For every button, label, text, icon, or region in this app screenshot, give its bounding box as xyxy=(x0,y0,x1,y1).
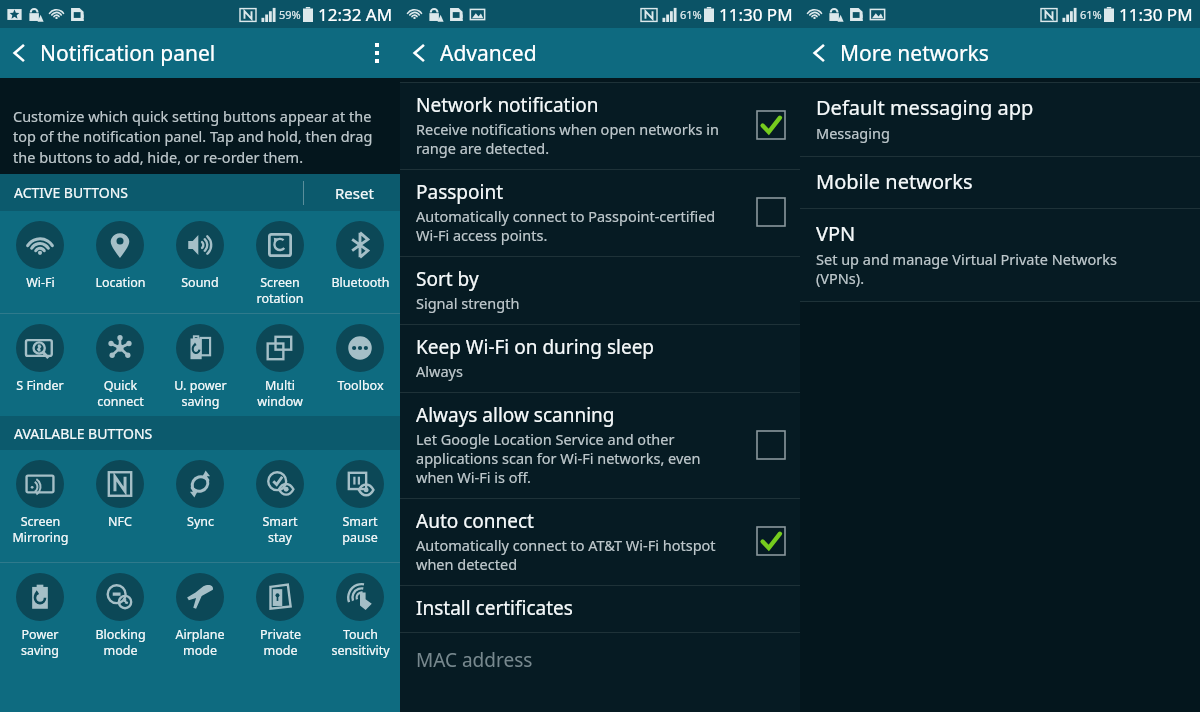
staticText: More networks xyxy=(840,39,989,68)
staticText: Quick connect xyxy=(97,377,144,409)
staticText: S Finder xyxy=(16,377,64,394)
button[interactable]: Passpoint xyxy=(400,170,800,256)
button[interactable]: Power saving xyxy=(0,563,80,675)
button[interactable]: Default messaging app xyxy=(800,83,1200,156)
staticText: Mobile networks xyxy=(816,168,973,195)
staticText: Install certificates xyxy=(416,595,573,621)
staticText: VPN xyxy=(816,220,856,247)
button[interactable]: Location xyxy=(80,211,160,313)
button[interactable]: Smart stay xyxy=(240,450,320,562)
staticText: Toolbox xyxy=(337,377,384,394)
staticText: 59% xyxy=(279,7,301,22)
staticText: Passpoint xyxy=(416,179,504,205)
button[interactable]: Always allow scanning xyxy=(756,430,786,460)
button[interactable]: Blocking mode xyxy=(80,563,160,675)
staticText: Keep Wi-Fi on during sleep xyxy=(416,334,655,360)
staticText: Blocking mode xyxy=(95,626,146,658)
staticText: Power saving xyxy=(21,626,59,658)
staticText: AVAILABLE BUTTONS xyxy=(14,424,153,443)
button[interactable]: Screen rotation xyxy=(240,211,320,313)
staticText: 61% xyxy=(680,7,702,22)
staticText: Default messaging app xyxy=(816,94,1034,121)
staticText: U. power saving xyxy=(174,377,227,409)
button[interactable]: Auto connect xyxy=(756,526,786,556)
button[interactable]: Sync xyxy=(160,450,240,562)
staticText: Automatically connect to Passpoint-certi… xyxy=(416,206,716,245)
staticText: Sync xyxy=(187,513,214,530)
button[interactable]: S Finder xyxy=(0,314,80,416)
staticText: Always allow scanning xyxy=(416,402,615,428)
button[interactable]: U. power saving xyxy=(160,314,240,416)
staticText: Always xyxy=(416,361,463,381)
button[interactable]: Reset xyxy=(308,174,400,211)
staticText: Wi-Fi xyxy=(26,274,55,291)
button[interactable]: Network notification xyxy=(756,110,786,140)
staticText: Bluetooth xyxy=(331,274,390,291)
staticText: Multi window xyxy=(257,377,303,409)
staticText: Screen rotation xyxy=(256,274,304,306)
staticText: 11:30 PM xyxy=(719,3,793,26)
staticText: Messaging xyxy=(816,123,890,143)
staticText: Smart pause xyxy=(342,513,378,545)
staticText: Notification panel xyxy=(40,39,216,68)
button[interactable]: Quick connect xyxy=(80,314,160,416)
staticText: Receive notifications when open networks… xyxy=(416,119,719,158)
staticText: Private mode xyxy=(260,626,301,658)
staticText: Signal strength xyxy=(416,293,520,313)
staticText: Let Google Location Service and other ap… xyxy=(416,429,701,487)
staticText: Automatically connect to AT&T Wi-Fi hots… xyxy=(416,535,716,574)
staticText: Screen Mirroring xyxy=(12,513,69,545)
button[interactable]: Sound xyxy=(160,211,240,313)
button[interactable]: Touch sensitivity xyxy=(320,563,400,675)
button[interactable]: NFC xyxy=(80,450,160,562)
staticText: Customize which quick setting buttons ap… xyxy=(13,106,384,168)
staticText: Set up and manage Virtual Private Networ… xyxy=(816,249,1117,288)
button[interactable]: Airplane mode xyxy=(160,563,240,675)
staticText: Network notification xyxy=(416,92,599,118)
button[interactable]: Network notification xyxy=(400,83,800,169)
staticText: Touch sensitivity xyxy=(331,626,390,658)
staticText: Advanced xyxy=(440,39,537,68)
button[interactable]: Auto connect xyxy=(400,499,800,585)
staticText: Auto connect xyxy=(416,508,534,534)
button[interactable]: Mobile networks xyxy=(800,157,1200,208)
staticText: Sort by xyxy=(416,266,479,292)
button[interactable]: Sort by xyxy=(400,257,800,324)
button[interactable]: Back xyxy=(800,34,836,72)
button[interactable]: VPN xyxy=(800,209,1200,301)
button[interactable]: Keep Wi-Fi on during sleep xyxy=(400,325,800,392)
button[interactable]: Screen Mirroring xyxy=(0,450,80,562)
button[interactable]: More options xyxy=(354,28,400,78)
button[interactable]: Smart pause xyxy=(320,450,400,562)
button[interactable]: Back xyxy=(400,34,436,72)
button[interactable]: Bluetooth xyxy=(320,211,400,313)
staticText: NFC xyxy=(108,513,132,530)
staticText: 12:32 AM xyxy=(318,3,393,26)
staticText: 11:30 PM xyxy=(1119,3,1193,26)
button[interactable]: Install certificates xyxy=(400,586,800,632)
staticText: Reset xyxy=(335,183,374,203)
button[interactable]: Passpoint xyxy=(756,197,786,227)
button[interactable]: Always allow scanning xyxy=(400,393,800,498)
button[interactable]: Multi window xyxy=(240,314,320,416)
staticText: ACTIVE BUTTONS xyxy=(14,183,129,202)
staticText: Airplane mode xyxy=(175,626,225,658)
staticText: MAC address xyxy=(416,647,533,673)
staticText: Smart stay xyxy=(262,513,298,545)
button[interactable]: Back xyxy=(0,34,36,72)
button[interactable]: Private mode xyxy=(240,563,320,675)
button[interactable]: Toolbox xyxy=(320,314,400,416)
staticText: Location xyxy=(95,274,146,291)
staticText: 61% xyxy=(1080,7,1102,22)
button[interactable]: Wi-Fi xyxy=(0,211,80,313)
staticText: Sound xyxy=(181,274,219,291)
